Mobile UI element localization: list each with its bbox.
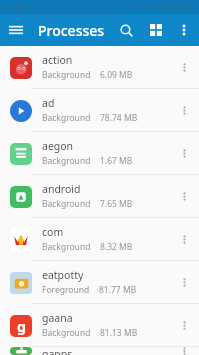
staticText: 81.13 MB — [100, 327, 138, 339]
button[interactable]: aegon — [0, 132, 199, 175]
button[interactable]: Item options — [173, 56, 195, 78]
staticText: eatpotty — [42, 268, 84, 282]
staticText: Processes — [38, 21, 105, 40]
staticText: gaana — [42, 311, 73, 325]
button[interactable]: Item options — [173, 99, 195, 121]
button[interactable]: ad — [0, 89, 199, 132]
button[interactable]: Open navigation menu — [0, 14, 32, 46]
staticText: g — [17, 317, 26, 336]
button[interactable]: eatpotty — [0, 261, 199, 304]
staticText: gapps — [42, 347, 73, 355]
button[interactable]: com — [0, 218, 199, 261]
staticText: 1.67 MB — [100, 155, 133, 167]
staticText: 8.32 MB — [100, 241, 133, 253]
staticText: Background — [42, 241, 91, 253]
staticText: Background — [42, 327, 91, 339]
staticText: 81.77 MB — [99, 284, 137, 296]
button[interactable]: Item options — [173, 228, 195, 250]
button[interactable]: g — [0, 304, 199, 347]
button[interactable]: Search — [111, 15, 141, 45]
staticText: Background — [42, 155, 91, 167]
button[interactable]: Grid view — [141, 15, 171, 45]
staticText: action — [42, 53, 73, 67]
button[interactable]: Item options — [173, 347, 195, 355]
staticText: Background — [42, 198, 91, 210]
staticText: Background — [42, 69, 91, 81]
button[interactable]: action — [0, 46, 199, 89]
button[interactable]: Item options — [173, 271, 195, 293]
staticText: 6.09 MB — [100, 69, 133, 81]
staticText: com — [42, 225, 64, 239]
button[interactable]: android — [0, 175, 199, 218]
button[interactable]: gapps — [0, 347, 199, 355]
staticText: ad — [42, 96, 55, 110]
button[interactable]: Item options — [173, 142, 195, 164]
staticText: android — [42, 182, 81, 196]
button[interactable]: Item options — [173, 185, 195, 207]
staticText: 7.65 MB — [100, 198, 133, 210]
button[interactable]: Item options — [173, 314, 195, 336]
staticText: Background — [42, 112, 91, 124]
staticText: aegon — [42, 139, 74, 153]
staticText: 78.74 MB — [100, 112, 138, 124]
staticText: Foreground — [42, 284, 90, 296]
button[interactable]: More options — [171, 17, 197, 43]
